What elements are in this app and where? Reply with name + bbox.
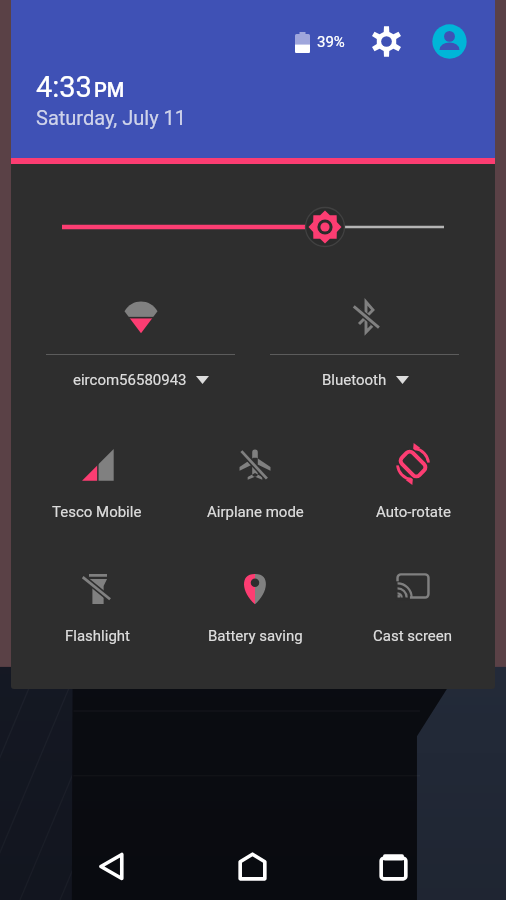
button[interactable]: Airplane mode bbox=[176, 447, 334, 521]
staticText: eircom56580943 bbox=[73, 371, 187, 389]
staticText: Saturday, July 11 bbox=[36, 106, 187, 129]
staticText: 4:33 bbox=[36, 70, 92, 104]
button[interactable]: User profile bbox=[432, 24, 467, 59]
staticText: Auto-rotate bbox=[376, 503, 451, 521]
staticText: PM bbox=[94, 78, 125, 101]
button[interactable]: Settings bbox=[369, 24, 404, 59]
button[interactable]: Cast screen bbox=[334, 571, 492, 645]
staticText: Airplane mode bbox=[207, 503, 304, 521]
button[interactable]: Brightness slider bbox=[11, 207, 495, 247]
button[interactable]: Bluetooth bbox=[253, 300, 478, 389]
button[interactable]: Tesco Mobile bbox=[18, 447, 176, 521]
staticText: Flashlight bbox=[65, 627, 130, 645]
staticText: 39% bbox=[317, 33, 345, 51]
button[interactable]: Recent apps bbox=[365, 838, 422, 895]
staticText: Bluetooth bbox=[322, 371, 387, 389]
button[interactable]: Flashlight bbox=[18, 571, 176, 645]
button[interactable]: eircom56580943 bbox=[28, 300, 253, 389]
button[interactable]: Back bbox=[84, 838, 141, 895]
button[interactable]: Home bbox=[224, 838, 281, 895]
button[interactable]: Auto-rotate bbox=[334, 447, 492, 521]
staticText: Tesco Mobile bbox=[52, 503, 142, 521]
staticText: Cast screen bbox=[373, 627, 453, 645]
button[interactable]: Battery saving bbox=[176, 571, 334, 645]
staticText: Battery saving bbox=[208, 627, 303, 645]
